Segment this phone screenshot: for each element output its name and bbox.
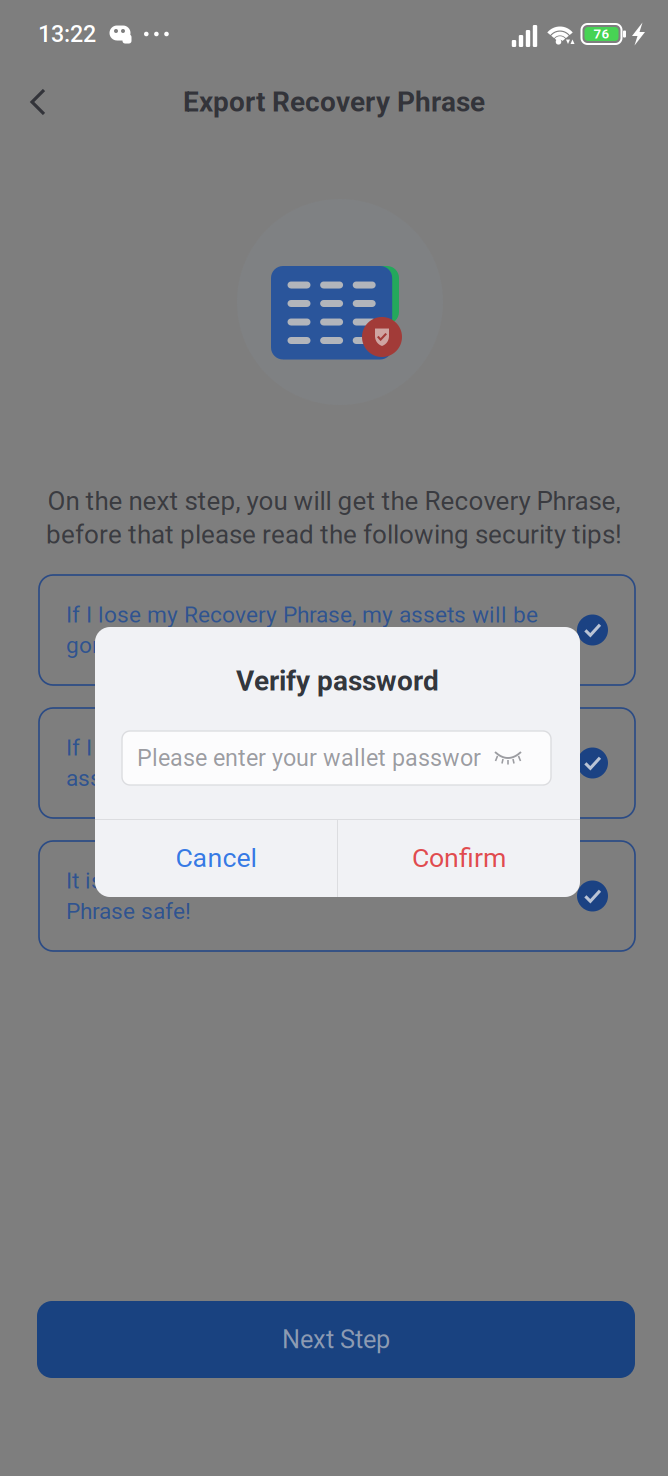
- staticText: Confirm: [412, 842, 506, 874]
- staticText: 13:22: [38, 20, 96, 48]
- button[interactable]: If I lose my Recovery Phrase, my assets …: [39, 575, 635, 685]
- staticText: before that please read the following se…: [46, 519, 622, 550]
- staticText: If I lose my Recovery Phrase, my assets …: [66, 601, 538, 628]
- staticText: Verify password: [236, 665, 439, 697]
- staticText: gone forever.: [66, 632, 198, 659]
- staticText: Next Step: [282, 1325, 390, 1354]
- staticText: If I expose or share my Recovery Phrase …: [66, 734, 575, 761]
- button[interactable]: Confirm: [338, 819, 580, 897]
- staticText: Cancel: [175, 842, 256, 874]
- staticText: On the next step, you will get the Recov…: [47, 486, 620, 516]
- staticText: Export Recovery Phrase: [183, 86, 485, 118]
- staticText: Phrase safe!: [66, 898, 191, 925]
- staticText: assets can be stolen.: [66, 765, 282, 792]
- button[interactable]: If I expose or share my Recovery Phrase …: [39, 708, 635, 818]
- button[interactable]: It is my full responsibility to keep my …: [39, 841, 635, 951]
- staticText: Please enter your wallet passwor: [137, 744, 481, 772]
- staticText: It is my full responsibility to keep my …: [66, 867, 537, 894]
- staticText: 76: [593, 26, 609, 42]
- button[interactable]: Cancel: [95, 819, 337, 897]
- button[interactable]: Next Step: [37, 1301, 635, 1378]
- button[interactable]: Back: [12, 76, 64, 128]
